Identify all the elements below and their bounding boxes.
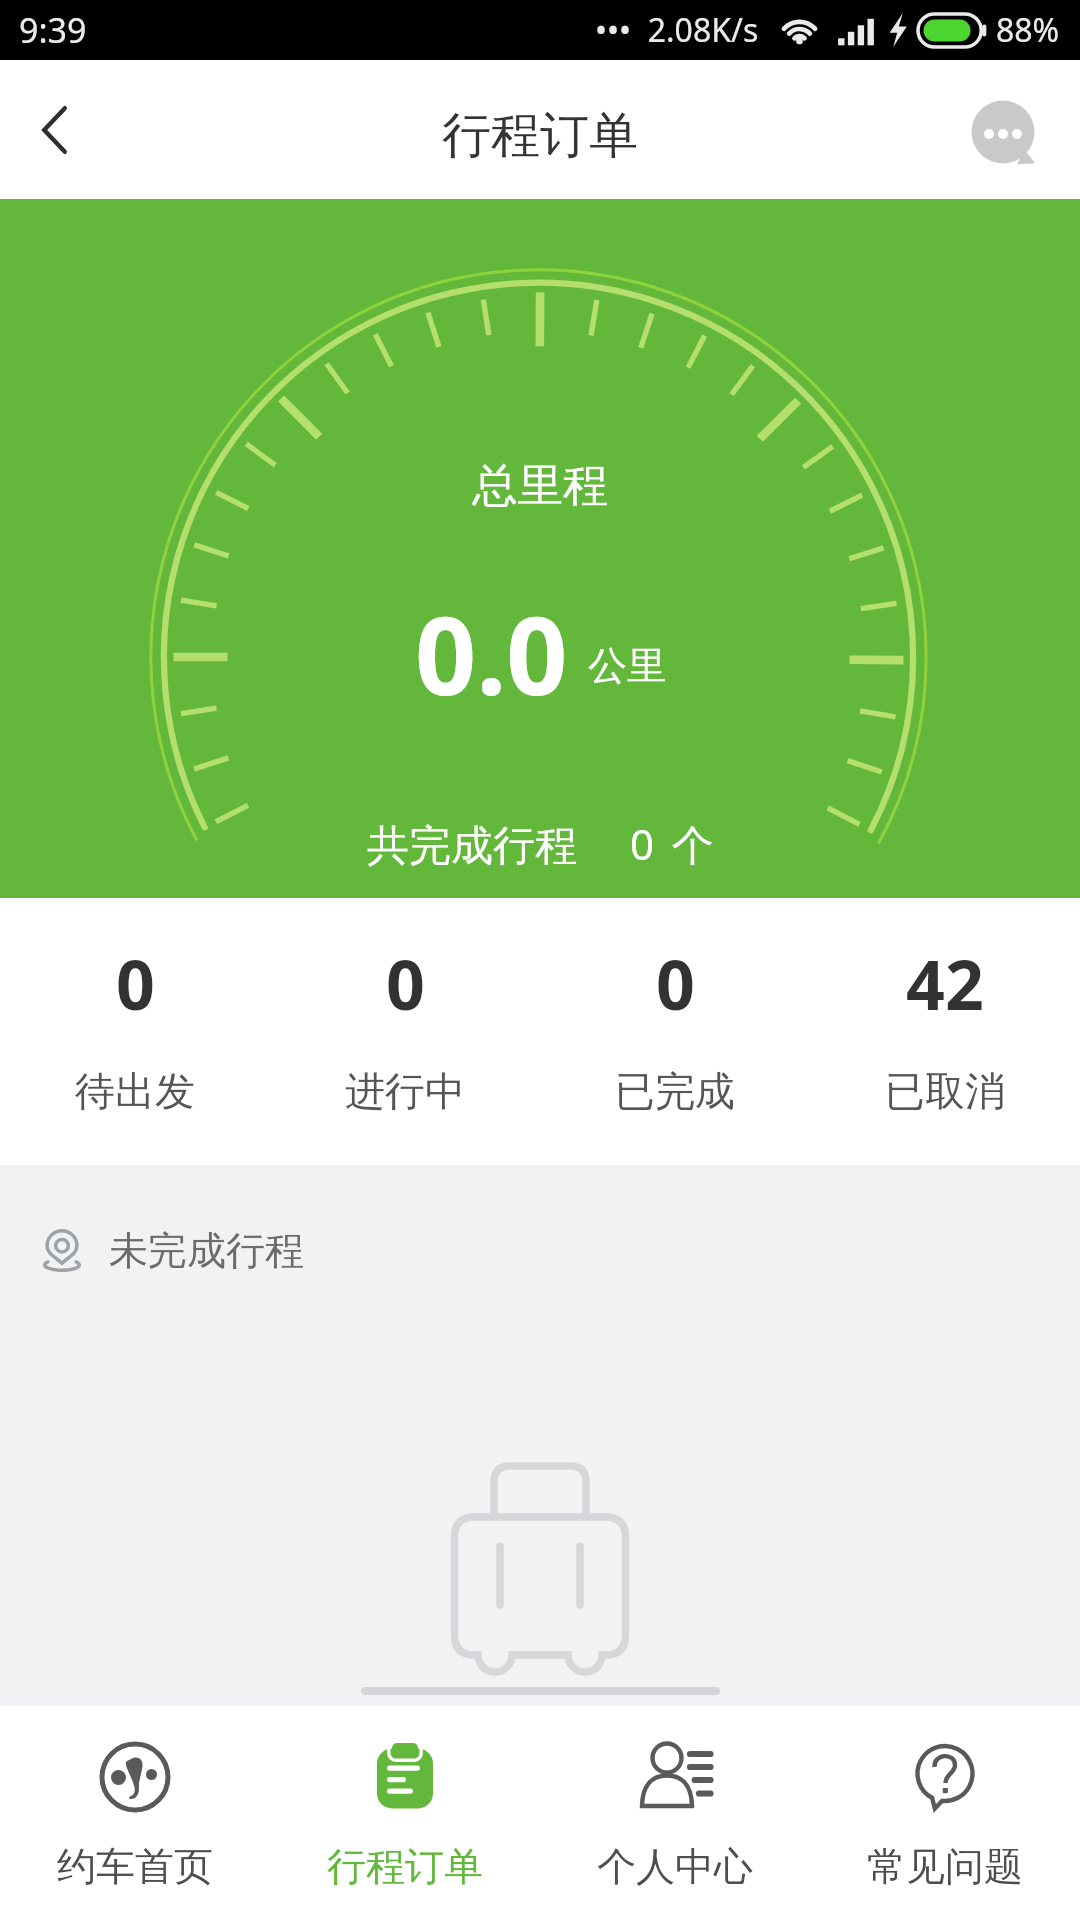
staticText: 行程订单: [442, 105, 638, 167]
button[interactable]: 未完成行程: [0, 1213, 1080, 1287]
staticText: 常见问题: [867, 1842, 1023, 1891]
staticText: 行程订单: [327, 1842, 483, 1891]
button[interactable]: 个人中心: [540, 1706, 810, 1920]
staticText: 个人中心: [597, 1842, 753, 1891]
button[interactable]: 约车首页: [0, 1706, 270, 1920]
staticText: 待出发: [75, 1066, 195, 1116]
staticText: 42: [906, 937, 984, 1030]
button[interactable]: 0: [270, 898, 540, 1165]
staticText: 约车首页: [57, 1842, 213, 1891]
staticText: 进行中: [345, 1066, 465, 1116]
staticText: 0: [656, 937, 695, 1030]
staticText: 总里程: [472, 457, 609, 514]
staticText: ••• 2.08K/s: [595, 8, 759, 52]
button[interactable]: 42: [810, 898, 1080, 1165]
staticText: 0: [386, 937, 425, 1030]
button[interactable]: 行程订单: [270, 1706, 540, 1920]
button[interactable]: 0: [540, 898, 810, 1165]
staticText: 0: [116, 937, 155, 1030]
button[interactable]: Back: [0, 60, 109, 199]
staticText: 共完成行程 0 个: [367, 815, 714, 872]
staticText: 已完成: [615, 1066, 735, 1116]
button[interactable]: 常见问题: [810, 1706, 1080, 1920]
staticText: 88%: [996, 8, 1060, 52]
staticText: 0.0: [415, 581, 568, 727]
staticText: 已取消: [885, 1066, 1005, 1116]
staticText: 9:39: [19, 7, 87, 53]
staticText: 公里: [588, 641, 666, 690]
staticText: 未完成行程: [109, 1226, 304, 1275]
button[interactable]: 0: [0, 898, 270, 1165]
button[interactable]: Customer service: [948, 77, 1058, 187]
